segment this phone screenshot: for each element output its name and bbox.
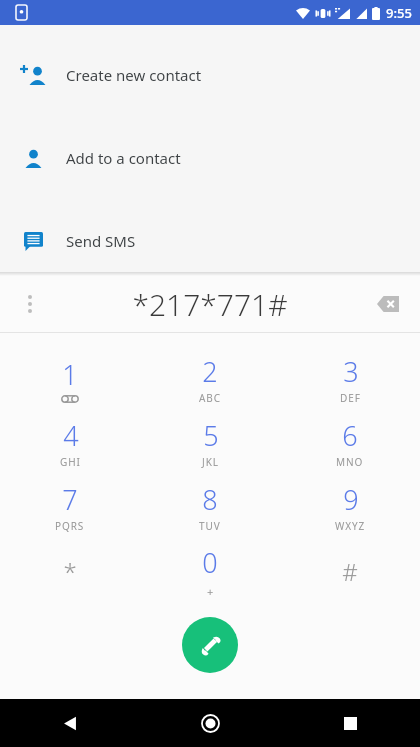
staticText: ABC (199, 391, 221, 405)
staticText: Send SMS (66, 231, 136, 251)
staticText: WXYZ (335, 519, 366, 533)
staticText: MNO (336, 455, 364, 469)
staticText: 9 (343, 481, 359, 518)
button[interactable]: More options (12, 286, 48, 322)
staticText: TUV (199, 519, 221, 533)
staticText: 8 (202, 481, 218, 518)
staticText: JKL (202, 455, 219, 469)
staticText: PQRS (55, 519, 85, 533)
staticText: Create new contact (66, 65, 202, 85)
staticText: 9:55 (386, 4, 412, 22)
staticText: Add to a contact (66, 148, 181, 168)
button[interactable]: 7 (0, 475, 140, 539)
button[interactable]: 9 (280, 475, 420, 539)
button[interactable]: # (280, 539, 420, 603)
button[interactable]: Call (182, 617, 238, 673)
button[interactable]: 2 (140, 347, 280, 411)
button[interactable]: Add to a contact (0, 138, 420, 178)
button[interactable]: Send SMS (0, 221, 420, 261)
staticText: 6 (342, 417, 358, 454)
staticText: 7 (62, 481, 78, 518)
button[interactable]: Back (0, 699, 140, 747)
staticText: + (207, 584, 214, 599)
staticText: *217*771# (132, 284, 288, 325)
button[interactable]: 6 (280, 411, 420, 475)
staticText: 5 (203, 417, 219, 454)
button[interactable]: 5 (140, 411, 280, 475)
button[interactable]: Create new contact (0, 55, 420, 95)
button[interactable]: 8 (140, 475, 280, 539)
button[interactable]: 0 (140, 539, 280, 603)
button[interactable]: Backspace (368, 284, 408, 324)
staticText: # (342, 555, 358, 588)
staticText: GHI (60, 455, 81, 469)
staticText: 4 (63, 417, 79, 454)
button[interactable]: 4 (0, 411, 140, 475)
staticText: 2 (202, 353, 218, 390)
staticText: DEF (340, 391, 361, 405)
staticText: 3 (343, 353, 359, 390)
staticText: * (63, 555, 77, 588)
button[interactable]: 1 (0, 347, 140, 411)
button[interactable]: Home (140, 699, 280, 747)
button[interactable]: * (0, 539, 140, 603)
staticText: 0 (202, 544, 218, 581)
button[interactable]: 3 (280, 347, 420, 411)
staticText: 1 (62, 356, 78, 393)
button[interactable]: Recent apps (280, 699, 420, 747)
